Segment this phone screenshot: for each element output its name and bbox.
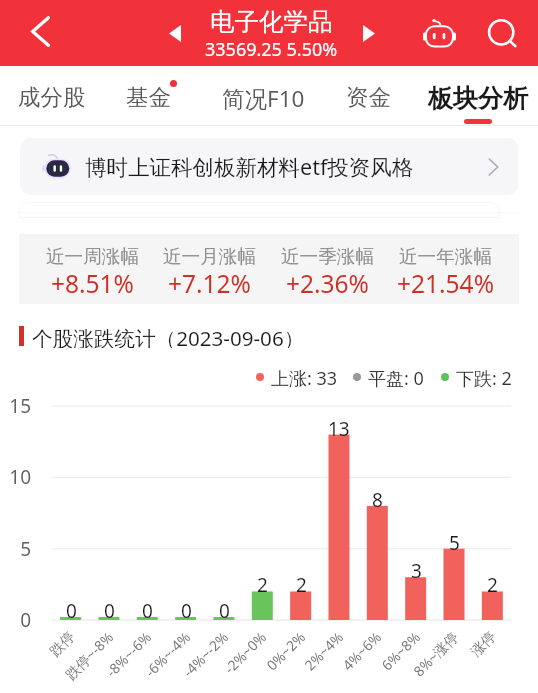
- button[interactable]: Back: [12, 3, 68, 59]
- button[interactable]: AI assistant: [416, 3, 462, 63]
- staticText: 资金: [346, 83, 391, 111]
- button[interactable]: Search: [479, 4, 525, 62]
- staticText: 5: [20, 536, 31, 562]
- button[interactable]: Previous sector: [156, 0, 193, 66]
- staticText: 5: [449, 530, 460, 556]
- staticText: 0%~2%: [262, 628, 309, 675]
- staticText: 板块分析: [428, 83, 528, 114]
- staticText: 3: [411, 558, 422, 584]
- staticText: -2%~0%: [220, 628, 270, 678]
- staticText: 4%~6%: [338, 628, 385, 675]
- button[interactable]: 成分股: [2, 66, 102, 124]
- staticText: 0: [219, 598, 230, 624]
- staticText: 平盘: 0: [368, 366, 424, 388]
- staticText: 0: [181, 598, 192, 624]
- staticText: 成分股: [18, 83, 86, 111]
- staticText: 上涨: 33: [271, 366, 338, 388]
- staticText: 跌停~-8%: [60, 628, 117, 684]
- staticText: 10: [9, 464, 31, 490]
- staticText: 基金: [126, 83, 171, 111]
- staticText: 近一季涨幅: [281, 245, 374, 268]
- staticText: 近一月涨幅: [163, 245, 256, 268]
- staticText: 0: [66, 598, 77, 624]
- staticText: -6%~-4%: [140, 628, 194, 681]
- staticText: 2: [257, 572, 268, 598]
- button[interactable]: 上涨: 33: [256, 366, 338, 388]
- staticText: 近一年涨幅: [399, 245, 492, 268]
- staticText: 13: [328, 416, 350, 442]
- button[interactable]: 板块分析: [428, 66, 528, 124]
- staticText: 0: [20, 607, 31, 633]
- button[interactable]: 资金: [318, 66, 418, 124]
- button[interactable]: 博时上证科创板新材料etf投资风格: [20, 138, 518, 195]
- staticText: +7.12%: [168, 267, 251, 300]
- staticText: 0: [104, 598, 115, 624]
- staticText: 个股涨跌统计（2023-09-06）: [32, 324, 305, 348]
- staticText: 6%~8%: [377, 628, 424, 675]
- staticText: 33569.25 5.50%: [205, 37, 338, 62]
- staticText: 近一周涨幅: [46, 245, 139, 268]
- staticText: 电子化学品: [210, 6, 333, 37]
- staticText: +21.54%: [397, 267, 494, 300]
- staticText: 跌停: [46, 628, 79, 661]
- button[interactable]: 基金: [98, 66, 198, 124]
- staticText: +2.36%: [286, 267, 369, 300]
- button[interactable]: 简况F10: [213, 66, 313, 124]
- button[interactable]: 平盘: 0: [353, 366, 424, 388]
- staticText: 8: [372, 487, 383, 513]
- staticText: 下跌: 2: [456, 366, 512, 388]
- staticText: -8%~-6%: [101, 628, 155, 681]
- staticText: 简况F10: [222, 83, 305, 114]
- staticText: 2%~4%: [300, 628, 347, 675]
- staticText: 8%~涨停: [409, 628, 462, 681]
- staticText: 0: [142, 598, 153, 624]
- staticText: 2: [487, 572, 498, 598]
- button[interactable]: Next sector: [350, 0, 387, 66]
- staticText: 15: [9, 393, 31, 419]
- button[interactable]: 下跌: 2: [441, 366, 512, 388]
- staticText: +8.51%: [51, 267, 134, 300]
- staticText: 涨停: [467, 628, 500, 661]
- staticText: 2: [296, 572, 307, 598]
- staticText: -4%~-2%: [178, 628, 232, 681]
- staticText: 博时上证科创板新材料etf投资风格: [85, 152, 414, 181]
